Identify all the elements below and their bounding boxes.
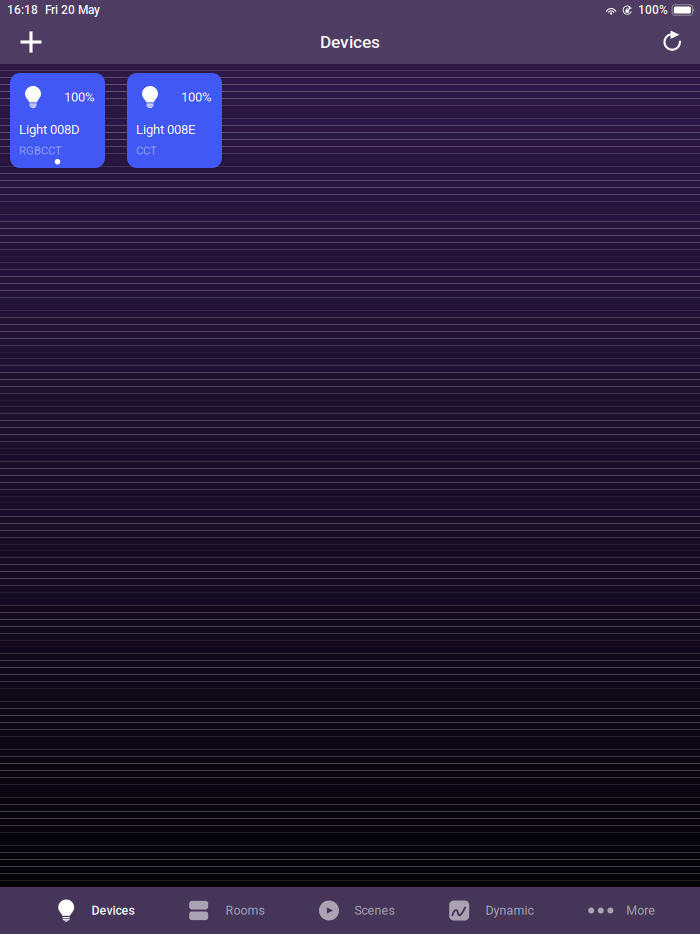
staticText: RGBCCT xyxy=(19,144,62,157)
button[interactable]: Scenes xyxy=(319,887,394,934)
staticText: Rooms xyxy=(225,903,264,918)
button[interactable]: Devices xyxy=(58,887,135,934)
staticText: Fri 20 May xyxy=(45,3,100,17)
staticText: 100% xyxy=(181,89,212,105)
button[interactable]: More xyxy=(588,887,655,934)
staticText: Scenes xyxy=(354,903,394,918)
button[interactable]: Add device xyxy=(10,20,52,64)
staticText: 100% xyxy=(638,3,668,17)
button[interactable]: 100% xyxy=(10,73,105,168)
staticText: Light 008E xyxy=(136,122,195,137)
button[interactable]: Rooms xyxy=(189,887,264,934)
staticText: Light 008D xyxy=(19,122,80,137)
staticText: Devices xyxy=(320,32,380,52)
staticText: CCT xyxy=(136,144,157,157)
button[interactable]: Dynamic xyxy=(449,887,534,934)
staticText: 16:18 xyxy=(7,3,38,17)
button[interactable]: 100% xyxy=(127,73,222,168)
staticText: 100% xyxy=(64,89,95,105)
staticText: Dynamic xyxy=(486,903,534,918)
staticText: Devices xyxy=(92,903,135,918)
button[interactable]: Refresh xyxy=(652,20,694,64)
staticText: More xyxy=(626,903,655,918)
